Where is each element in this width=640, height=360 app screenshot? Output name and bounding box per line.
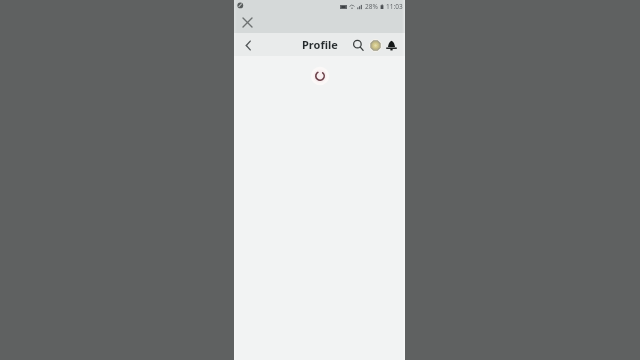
staticText: 28% [365,2,378,11]
button[interactable]: Rewards [367,37,384,54]
staticText: Profile [302,37,338,52]
button[interactable]: Notifications [384,38,399,53]
button[interactable]: Close [239,14,256,31]
button[interactable]: Search [349,36,367,54]
button[interactable]: Back [240,37,256,53]
staticText: 11:03 [386,2,403,11]
